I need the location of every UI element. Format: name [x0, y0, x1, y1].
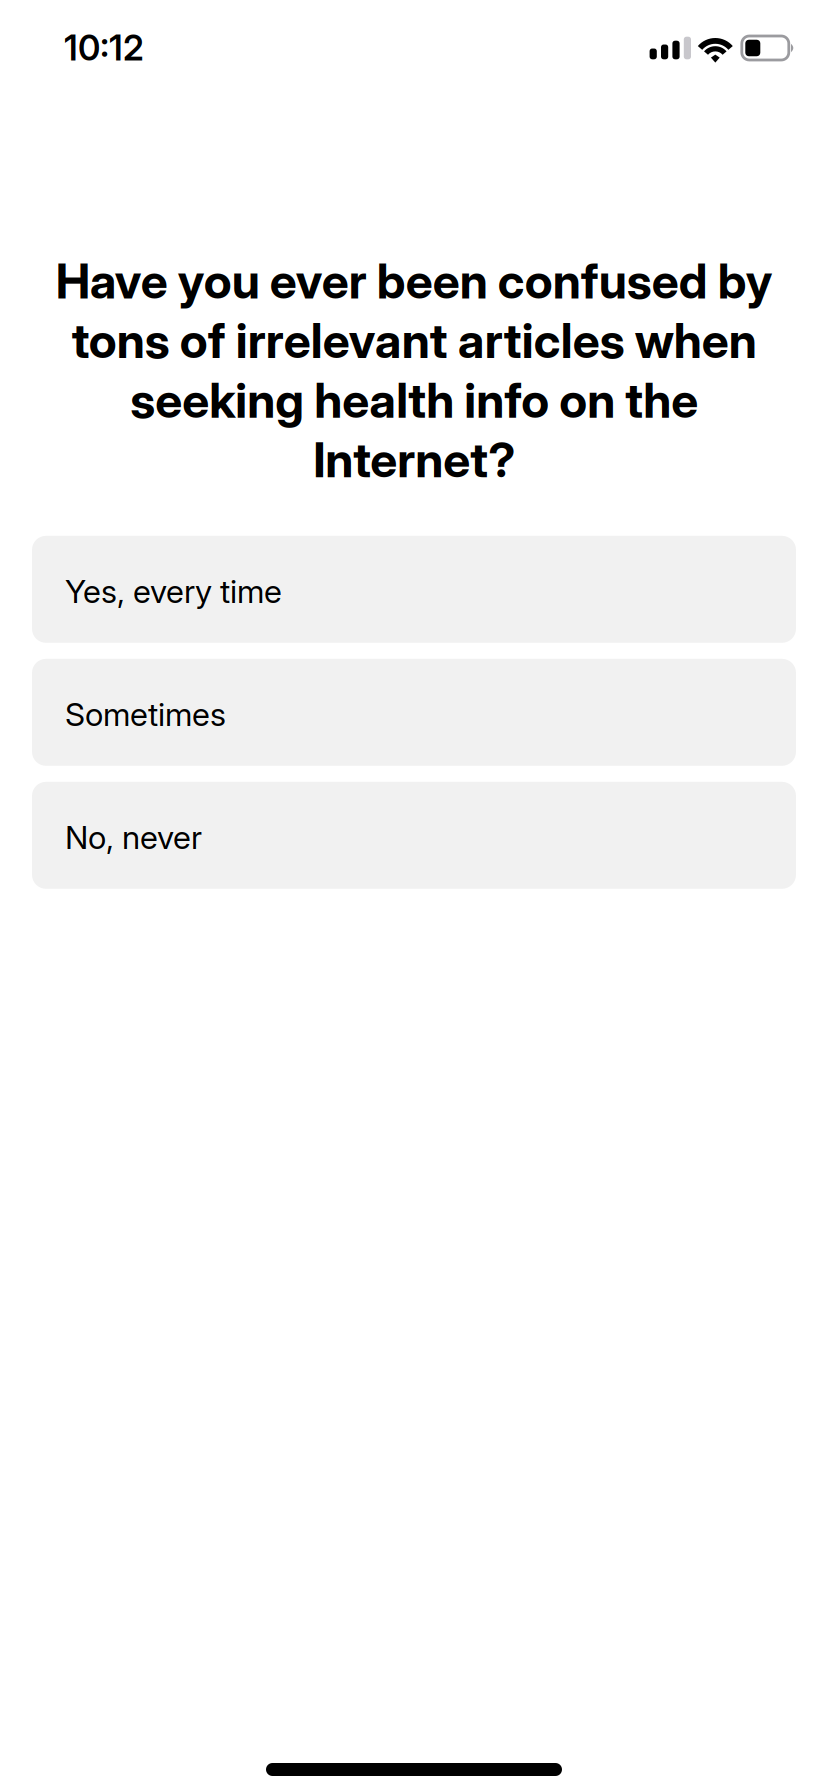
- button[interactable]: Sometimes: [32, 659, 796, 766]
- staticText: No, never: [65, 818, 202, 857]
- button[interactable]: No, never: [32, 782, 796, 889]
- staticText: Have you ever been confused by tons of i…: [55, 252, 772, 489]
- staticText: Yes, every time: [65, 572, 282, 611]
- staticText: 10:12: [64, 27, 144, 69]
- staticText: Sometimes: [65, 695, 226, 734]
- button[interactable]: Yes, every time: [32, 536, 796, 643]
